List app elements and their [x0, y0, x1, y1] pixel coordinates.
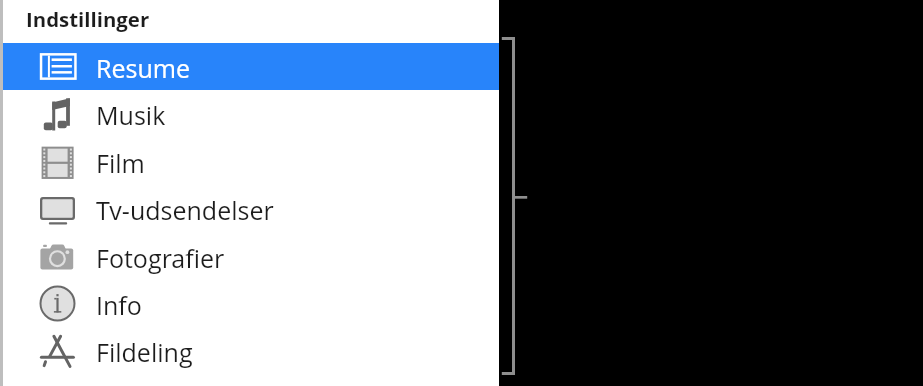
staticText: Indstillinger: [26, 5, 150, 33]
button[interactable]: Resume: [0, 43, 499, 90]
button[interactable]: Film: [0, 138, 499, 185]
staticText: Film: [96, 146, 145, 180]
staticText: Musik: [96, 98, 166, 132]
button[interactable]: Fildeling: [0, 327, 499, 374]
staticText: Fotografier: [96, 241, 225, 275]
button[interactable]: Musik: [0, 90, 499, 137]
button[interactable]: Tv-udsendelser: [0, 185, 499, 232]
staticText: Fildeling: [96, 335, 193, 369]
staticText: Tv-udsendelser: [96, 193, 274, 227]
staticText: Resume: [96, 51, 191, 85]
button[interactable]: Info: [0, 280, 499, 327]
staticText: Info: [96, 288, 142, 322]
button[interactable]: Fotografier: [0, 233, 499, 280]
